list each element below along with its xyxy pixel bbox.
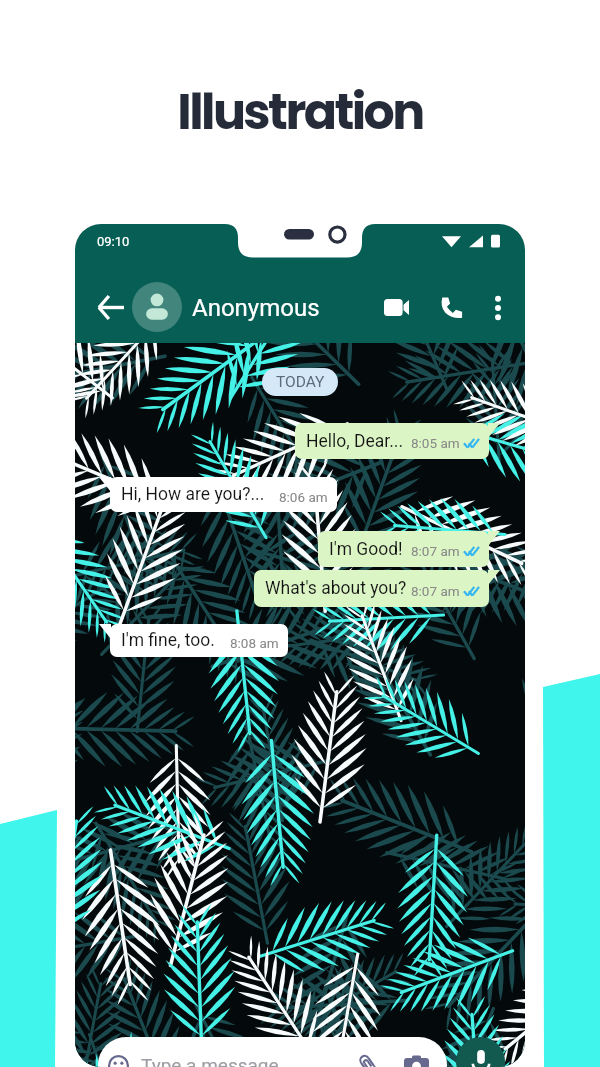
staticText: 8:08 am [230,635,279,651]
button[interactable]: Back [89,286,131,328]
staticText: Hello, Dear... [306,431,404,452]
button[interactable]: Camera [401,1050,431,1067]
staticText: Type a message [141,1054,279,1067]
button[interactable]: Call [431,287,471,327]
staticText: I'm Good! [329,539,403,560]
button[interactable]: Type a message [98,1037,447,1067]
button[interactable]: Video call [376,287,416,327]
button[interactable]: Contact photo [132,282,182,332]
button[interactable]: More options [480,287,516,323]
button[interactable]: I'm fine, too. [110,624,288,657]
staticText: What's about you? [265,578,407,599]
button[interactable]: What's about you? [254,570,489,607]
button[interactable]: Hello, Dear... [295,423,489,459]
staticText: Hi, How are you?... [121,484,265,505]
staticText: TODAY [276,373,325,391]
staticText: 09:10 [97,234,130,249]
staticText: 8:07 am [411,583,460,599]
button[interactable]: Hi, How are you?... [110,477,337,512]
staticText: 8:05 am [411,435,460,451]
staticText: I'm fine, too. [121,630,215,651]
staticText: Illustration [0,78,600,147]
staticText: 8:07 am [411,543,460,559]
button[interactable]: I'm Good! [318,531,489,567]
staticText: 8:06 am [279,489,328,505]
button[interactable]: Record voice message [456,1037,505,1067]
button[interactable]: Attach [353,1050,383,1067]
staticText: Anonymous [192,294,320,322]
